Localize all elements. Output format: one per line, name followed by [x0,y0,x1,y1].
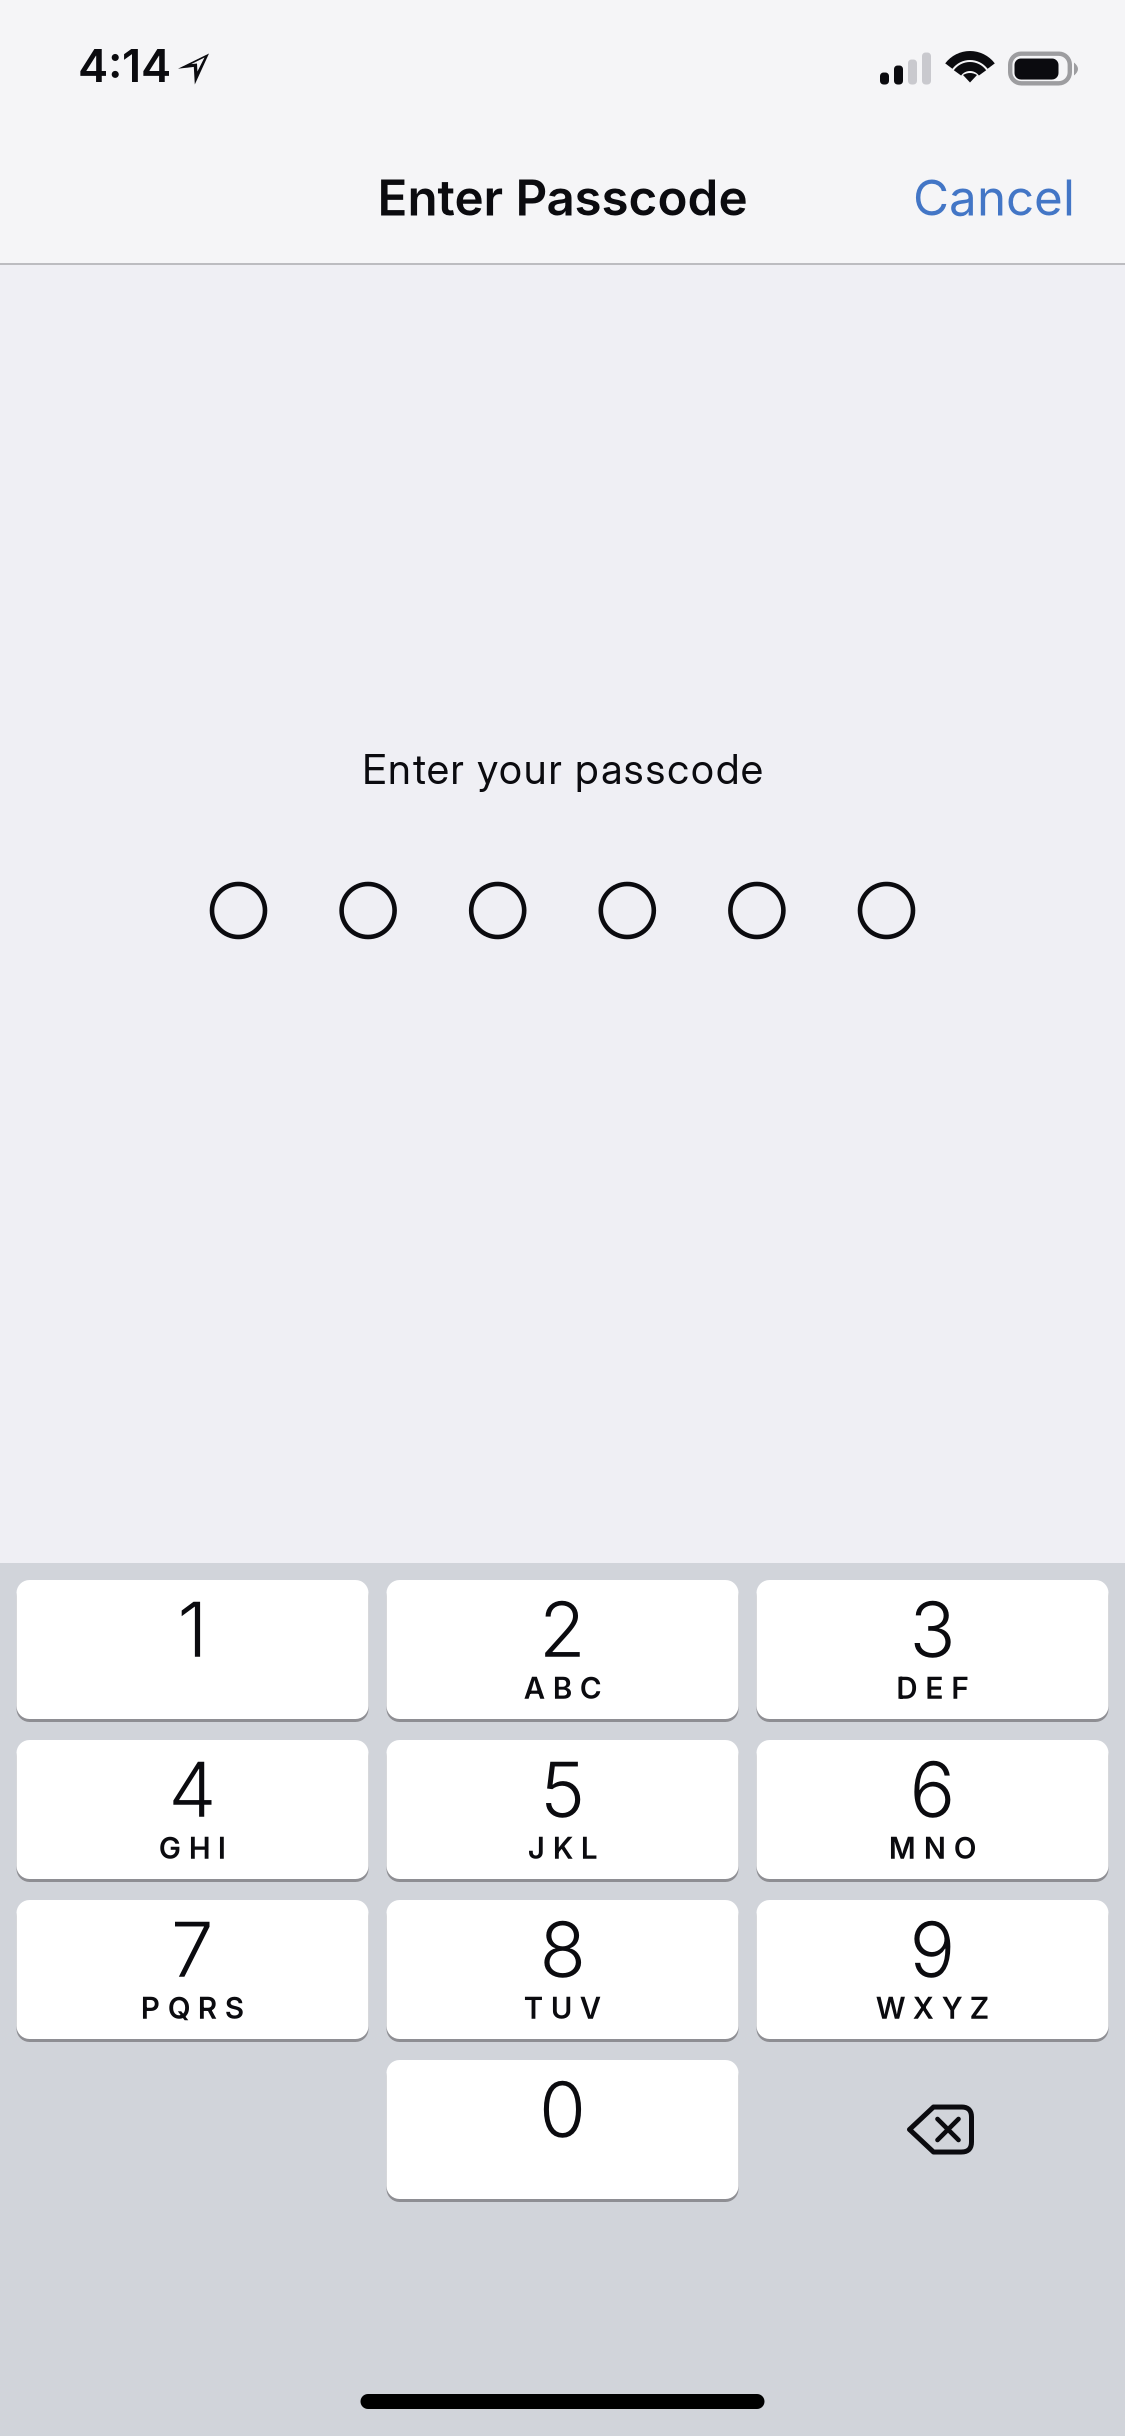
staticText: 2 [539,1583,586,1675]
button[interactable]: 2 [386,1580,738,1719]
button[interactable]: 9 [756,1900,1108,2039]
staticText: WXYZ [876,1990,989,2026]
staticText: JKL [528,1830,597,1866]
button[interactable]: 8 [386,1900,738,2039]
button[interactable]: 7 [16,1900,368,2039]
button[interactable]: 6 [756,1740,1108,1879]
staticText: 4 [168,1743,216,1835]
staticText: PQRS [141,1990,244,2026]
staticText: 8 [539,1903,585,1995]
staticText: 9 [909,1903,955,1995]
button[interactable]: 4 [16,1740,368,1879]
staticText: 7 [171,1903,214,1995]
button[interactable]: 0 [386,2060,738,2199]
button[interactable]: Delete [756,2060,1108,2199]
staticText: ABC [524,1670,601,1706]
staticText: Enter Passcode [377,168,747,227]
staticText: 6 [909,1743,955,1835]
staticText: 0 [539,2063,586,2155]
staticText: MNO [889,1830,976,1866]
staticText: Cancel [913,168,1075,227]
staticText: GHI [159,1830,226,1866]
button[interactable]: Cancel [887,146,1101,249]
staticText: TUV [524,1990,601,2026]
staticText: 5 [540,1743,585,1835]
staticText: 1 [177,1583,207,1675]
button[interactable]: 5 [386,1740,738,1879]
staticText: 3 [909,1583,955,1675]
button[interactable]: 3 [756,1580,1108,1719]
staticText: 4:14 [78,38,171,93]
staticText: DEF [896,1670,968,1706]
button[interactable]: 1 [16,1580,368,1719]
staticText: Enter your passcode [362,744,763,794]
